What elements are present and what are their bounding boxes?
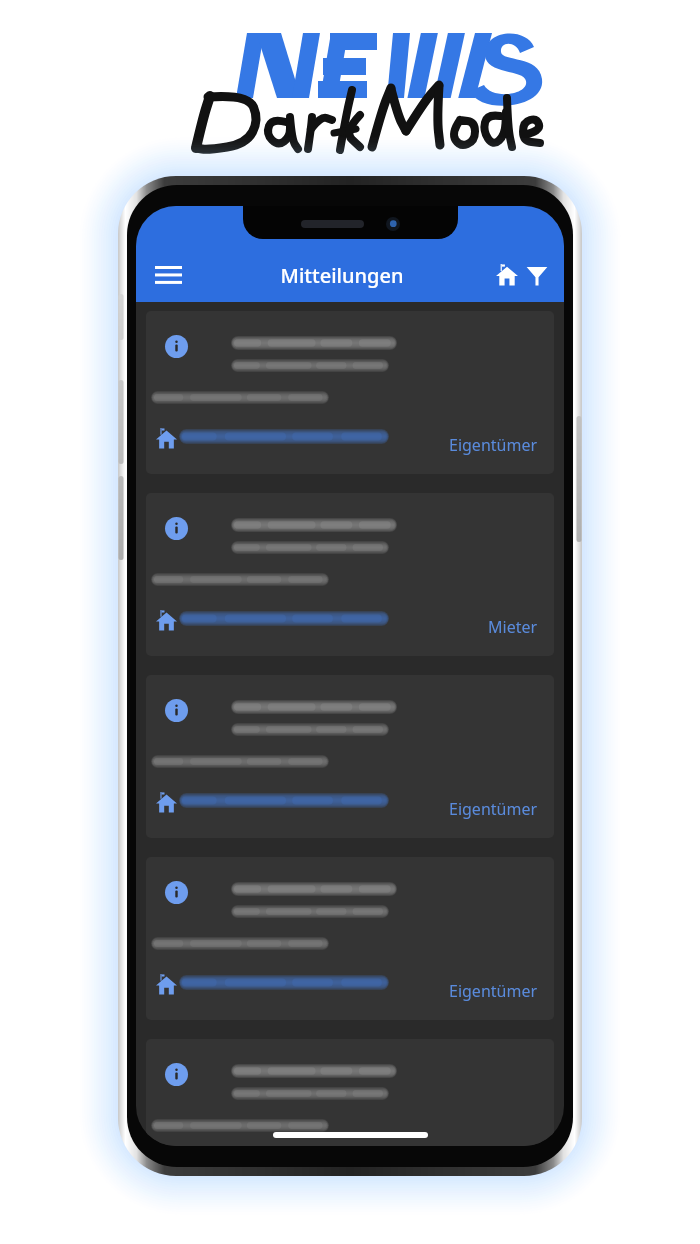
button[interactable]: Eigentümer (146, 311, 554, 474)
staticText: Eigentümer (449, 798, 538, 820)
staticText: Eigentümer (449, 980, 538, 1002)
button[interactable]: Eigentümer (146, 675, 554, 838)
staticText: Eigentümer (449, 434, 538, 456)
button[interactable]: Mieter (146, 493, 554, 656)
staticText: Mitteilungen (192, 262, 492, 289)
button[interactable]: Objekt (492, 260, 522, 290)
button[interactable]: Filter (522, 260, 552, 290)
button[interactable]: Eigentümer (146, 857, 554, 1020)
button[interactable]: Menü (144, 251, 192, 299)
staticText: Mieter (488, 616, 538, 638)
button[interactable] (146, 1039, 554, 1146)
